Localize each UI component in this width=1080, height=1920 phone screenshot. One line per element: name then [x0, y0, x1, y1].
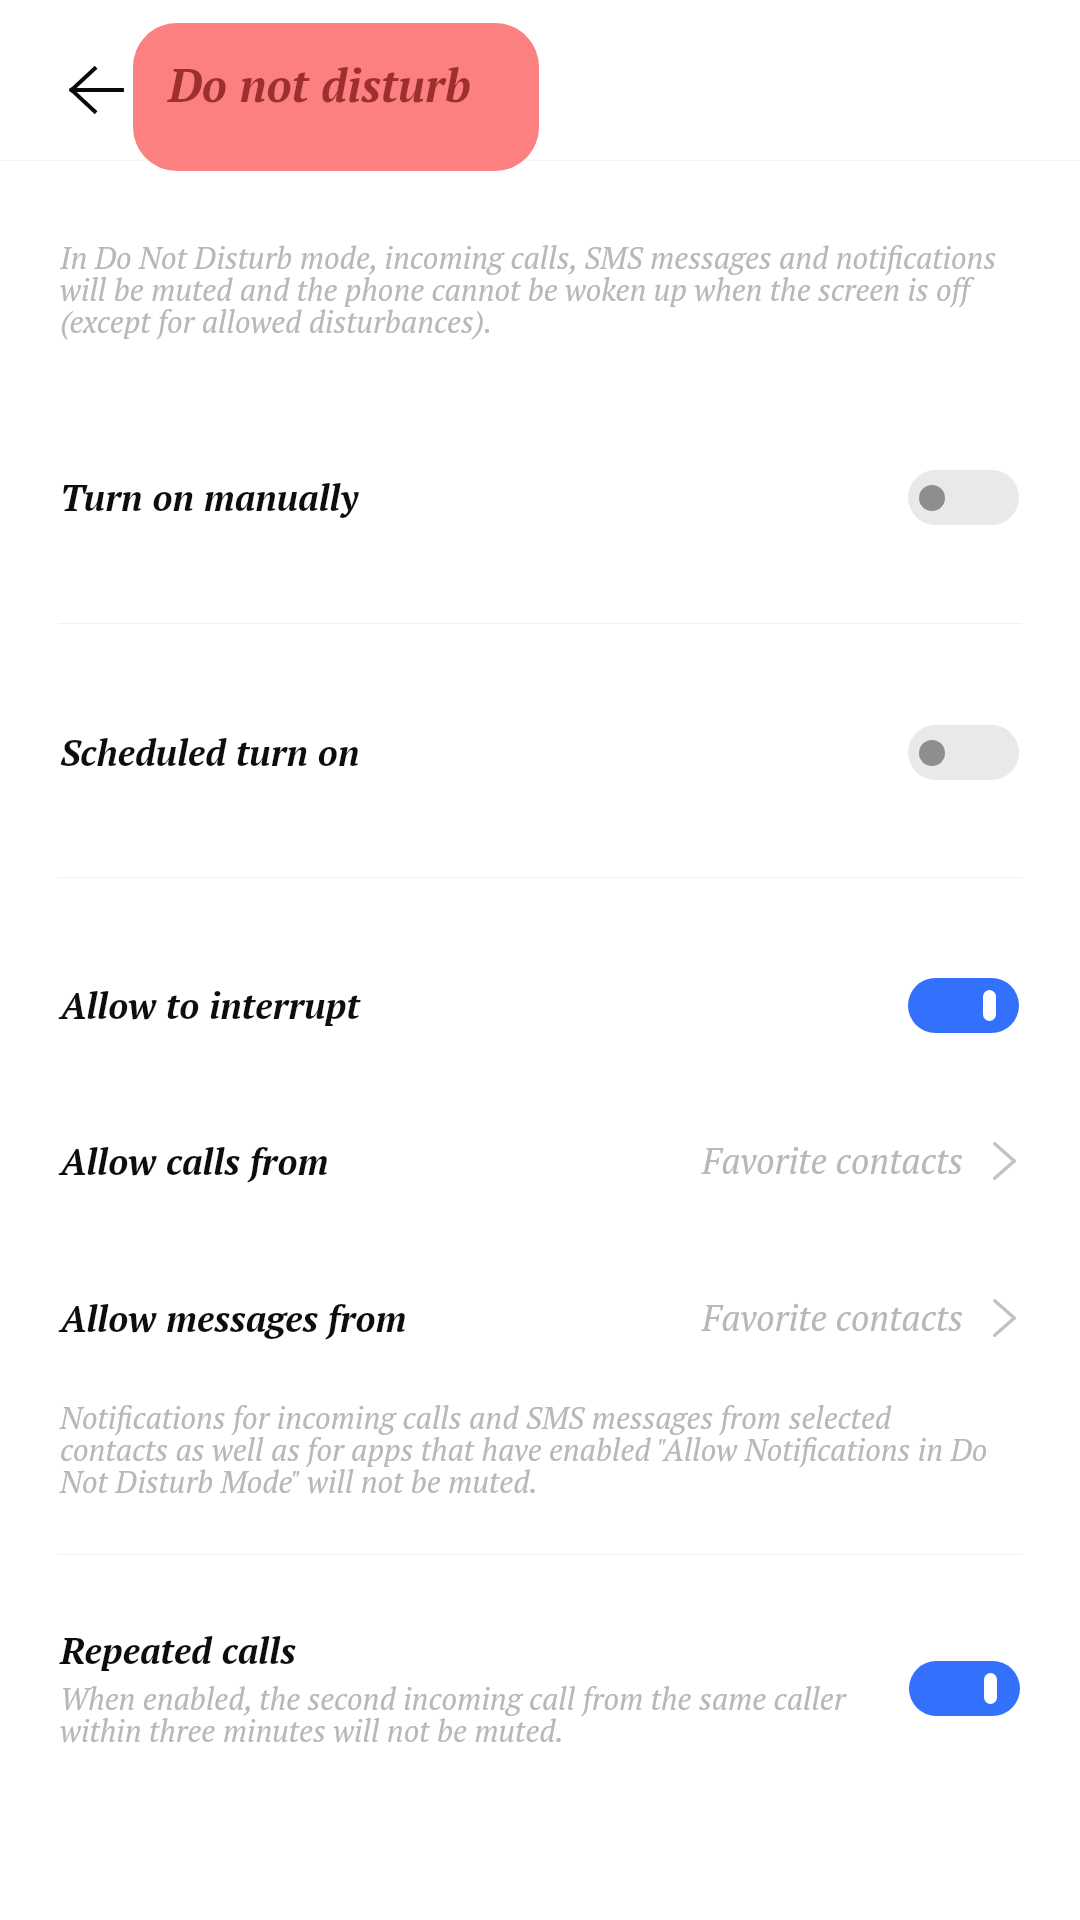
button[interactable]: Repeated calls [0, 1626, 1080, 1751]
staticText: Favorite contacts [702, 1137, 964, 1185]
staticText: Turn on manually [60, 473, 359, 521]
button[interactable]: Allow to interrupt [0, 940, 1080, 1070]
staticText: Favorite contacts [702, 1294, 964, 1342]
staticText: When enabled, the second incoming call f… [60, 1678, 846, 1751]
button[interactable]: Enabled [908, 978, 1019, 1033]
staticText: Allow messages from [60, 1294, 407, 1342]
button[interactable]: Disabled [908, 725, 1019, 780]
staticText: Repeated calls [60, 1626, 296, 1674]
button[interactable]: Back [48, 42, 144, 138]
staticText: Scheduled turn on [60, 728, 360, 776]
button[interactable]: Turn on manually [0, 432, 1080, 562]
button[interactable]: Allow calls from [0, 1096, 1080, 1226]
staticText: Do not disturb [168, 54, 471, 115]
staticText: In Do Not Disturb mode, incoming calls, … [60, 237, 997, 342]
staticText: Allow calls from [60, 1137, 329, 1185]
button[interactable]: Enabled [909, 1661, 1020, 1716]
button[interactable]: Allow messages from [0, 1253, 1080, 1383]
button[interactable]: Scheduled turn on [0, 687, 1080, 817]
staticText: Allow to interrupt [60, 981, 360, 1029]
button[interactable]: Disabled [908, 470, 1019, 525]
button[interactable]: Do not disturb [133, 23, 539, 171]
staticText: Notifications for incoming calls and SMS… [60, 1397, 988, 1502]
